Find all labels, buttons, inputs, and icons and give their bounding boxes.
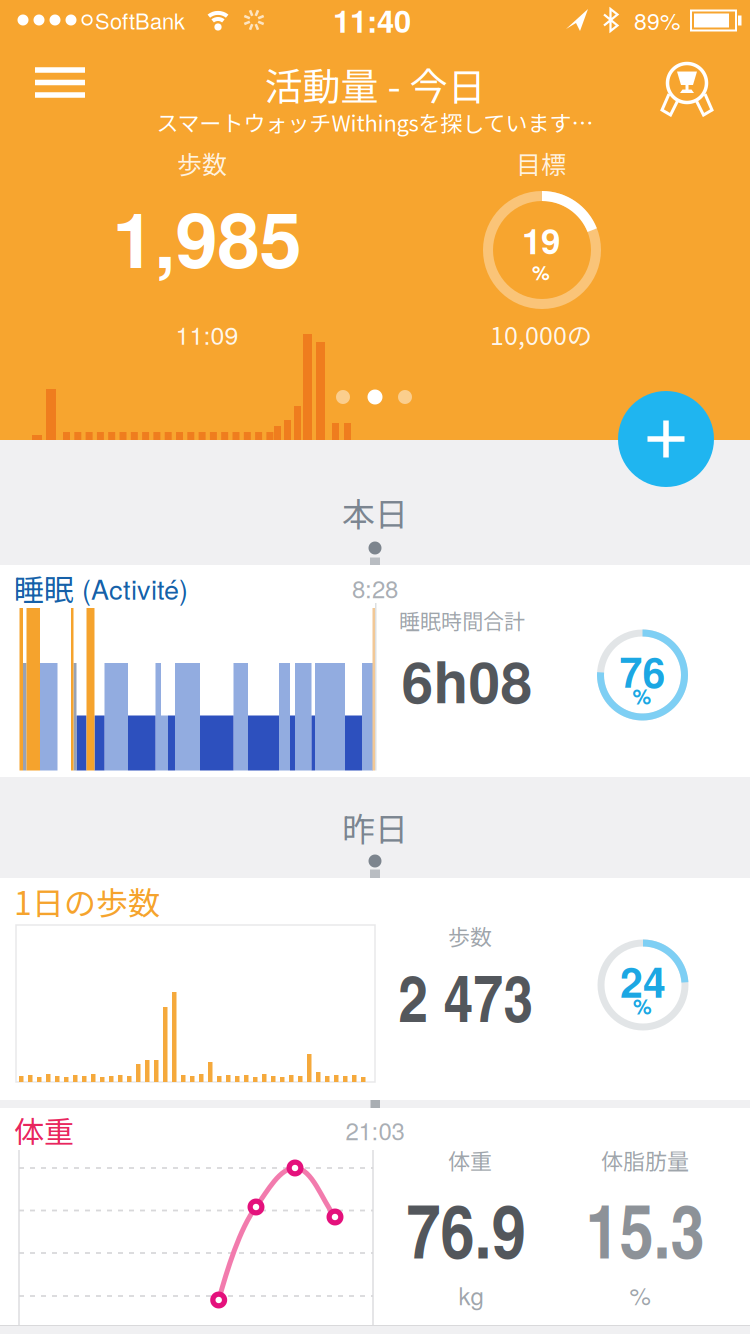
staticText: 歩数 [177,145,227,181]
staticText: 89% [634,3,680,36]
staticText: スマートウォッチWithingsを探しています… [156,106,593,138]
staticText: % [633,991,652,1021]
staticText: 活動量 - 今日 [264,56,485,111]
button[interactable]: 1日の歩数 [0,878,750,1100]
staticText: 睡眠 [14,566,74,610]
staticText: 2 473 [398,950,533,1042]
staticText: 24 [620,952,666,1010]
staticText: 歩数 [448,920,492,952]
staticText: % [629,1278,650,1312]
staticText: 6h08 [401,639,532,721]
staticText: 睡眠時間合計 [399,605,525,635]
staticText: 目標 [516,145,566,181]
staticText: 10,000の [490,316,592,352]
staticText: % [532,258,550,286]
staticText: 昨日 [342,803,408,851]
staticText: 体重 [448,1144,492,1176]
staticText: 体重 [14,1108,74,1152]
button[interactable]: Menu [35,67,85,98]
button[interactable]: Achievements [655,48,719,118]
staticText: 1,985 [112,183,301,291]
staticText: 11:40 [333,0,411,42]
staticText: SoftBank [95,4,185,36]
staticText: 19 [522,215,560,265]
button[interactable]: 体重 [0,1108,750,1325]
staticText: 体脂肪量 [601,1144,689,1176]
staticText: (Activité) [74,569,188,607]
staticText: kg [458,1278,483,1312]
staticText: 本日 [342,488,408,536]
staticText: 76 [619,642,665,700]
button[interactable]: Add [618,391,714,487]
staticText: 15.3 [585,1175,704,1281]
staticText: 21:03 [345,1113,404,1147]
staticText: % [632,681,651,711]
staticText: 8:28 [352,571,398,605]
button[interactable]: 睡眠 [0,565,750,777]
staticText: 1日の歩数 [14,878,160,924]
staticText: 76.9 [406,1175,525,1281]
staticText: 11:09 [175,316,238,352]
